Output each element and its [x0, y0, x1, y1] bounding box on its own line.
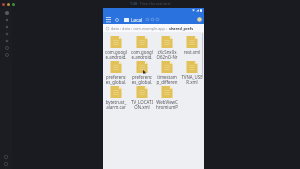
button[interactable]: rest.xml: [179, 36, 204, 61]
staticText: data › data › com.example.app ›: [111, 26, 169, 31]
button[interactable]: Action 0: [145, 17, 150, 22]
button[interactable]: Root: [105, 26, 110, 31]
staticText: com.google.android.gms.appid: [105, 49, 127, 60]
button[interactable]: Rotate right: [1, 37, 12, 44]
button[interactable]: Window control: [12, 3, 15, 6]
staticText: TV_LOCATION.xml: [131, 99, 153, 110]
staticText: timestamp_difference.xml: [156, 74, 178, 85]
button[interactable]: TVNA_USER.xml: [179, 61, 204, 86]
button[interactable]: Action 1: [150, 17, 155, 22]
staticText: TVNA_USER.xml: [181, 74, 203, 85]
button[interactable]: bytetrust_alarm.card: [103, 86, 129, 111]
button[interactable]: Account: [196, 16, 203, 23]
staticText: Files: the real deal: [140, 1, 171, 6]
staticText: rest.xml: [181, 49, 203, 55]
button[interactable]: zXcSnx0xO62nO-NraO6Vstra.xml: [154, 36, 179, 61]
button[interactable]: Zoom: [1, 51, 12, 58]
staticText: 7:28: [130, 1, 138, 6]
button[interactable]: Rotate left: [1, 30, 12, 37]
button[interactable]: WebViewChromiumPrefs.xml: [154, 86, 179, 111]
button[interactable]: preferences_global.key.xml: [103, 61, 129, 86]
button[interactable]: Volume up: [1, 16, 12, 23]
button[interactable]: com.google.android.gms.meas: [129, 36, 154, 61]
button[interactable]: Up: [114, 17, 120, 23]
staticText: preferences_global.key.xml: [105, 74, 127, 85]
staticText: bytetrust_alarm.card: [105, 99, 127, 110]
staticText: Local: [131, 17, 143, 23]
button[interactable]: Window control: [2, 3, 5, 6]
button[interactable]: Home: [0, 160, 12, 167]
staticText: shared_prefs: [169, 26, 194, 31]
button[interactable]: Action 2: [155, 17, 160, 22]
staticText: WebViewChromiumPrefs.xml: [156, 99, 178, 110]
button[interactable]: timestamp_difference.xml: [154, 61, 179, 86]
button[interactable]: Menu: [105, 16, 112, 23]
button[interactable]: TV_LOCATION.xml: [129, 86, 154, 111]
staticText: zXcSnx0xO62nO-NraO6Vstra.xml: [156, 49, 178, 60]
button[interactable]: Volume down: [1, 23, 12, 30]
staticText: preferences_global.kbsat7.xml: [131, 74, 153, 85]
button[interactable]: Screenshot: [1, 44, 12, 51]
button[interactable]: Window control: [7, 3, 10, 6]
button[interactable]: com.google.android.gms.appid: [103, 36, 129, 61]
button[interactable]: preferences_global.kbsat7.xml: [129, 61, 154, 86]
button[interactable]: Local storage: [124, 17, 143, 23]
button[interactable]: Power: [1, 9, 12, 16]
staticText: com.google.android.gms.meas: [131, 49, 153, 60]
button[interactable]: Back: [0, 153, 12, 160]
